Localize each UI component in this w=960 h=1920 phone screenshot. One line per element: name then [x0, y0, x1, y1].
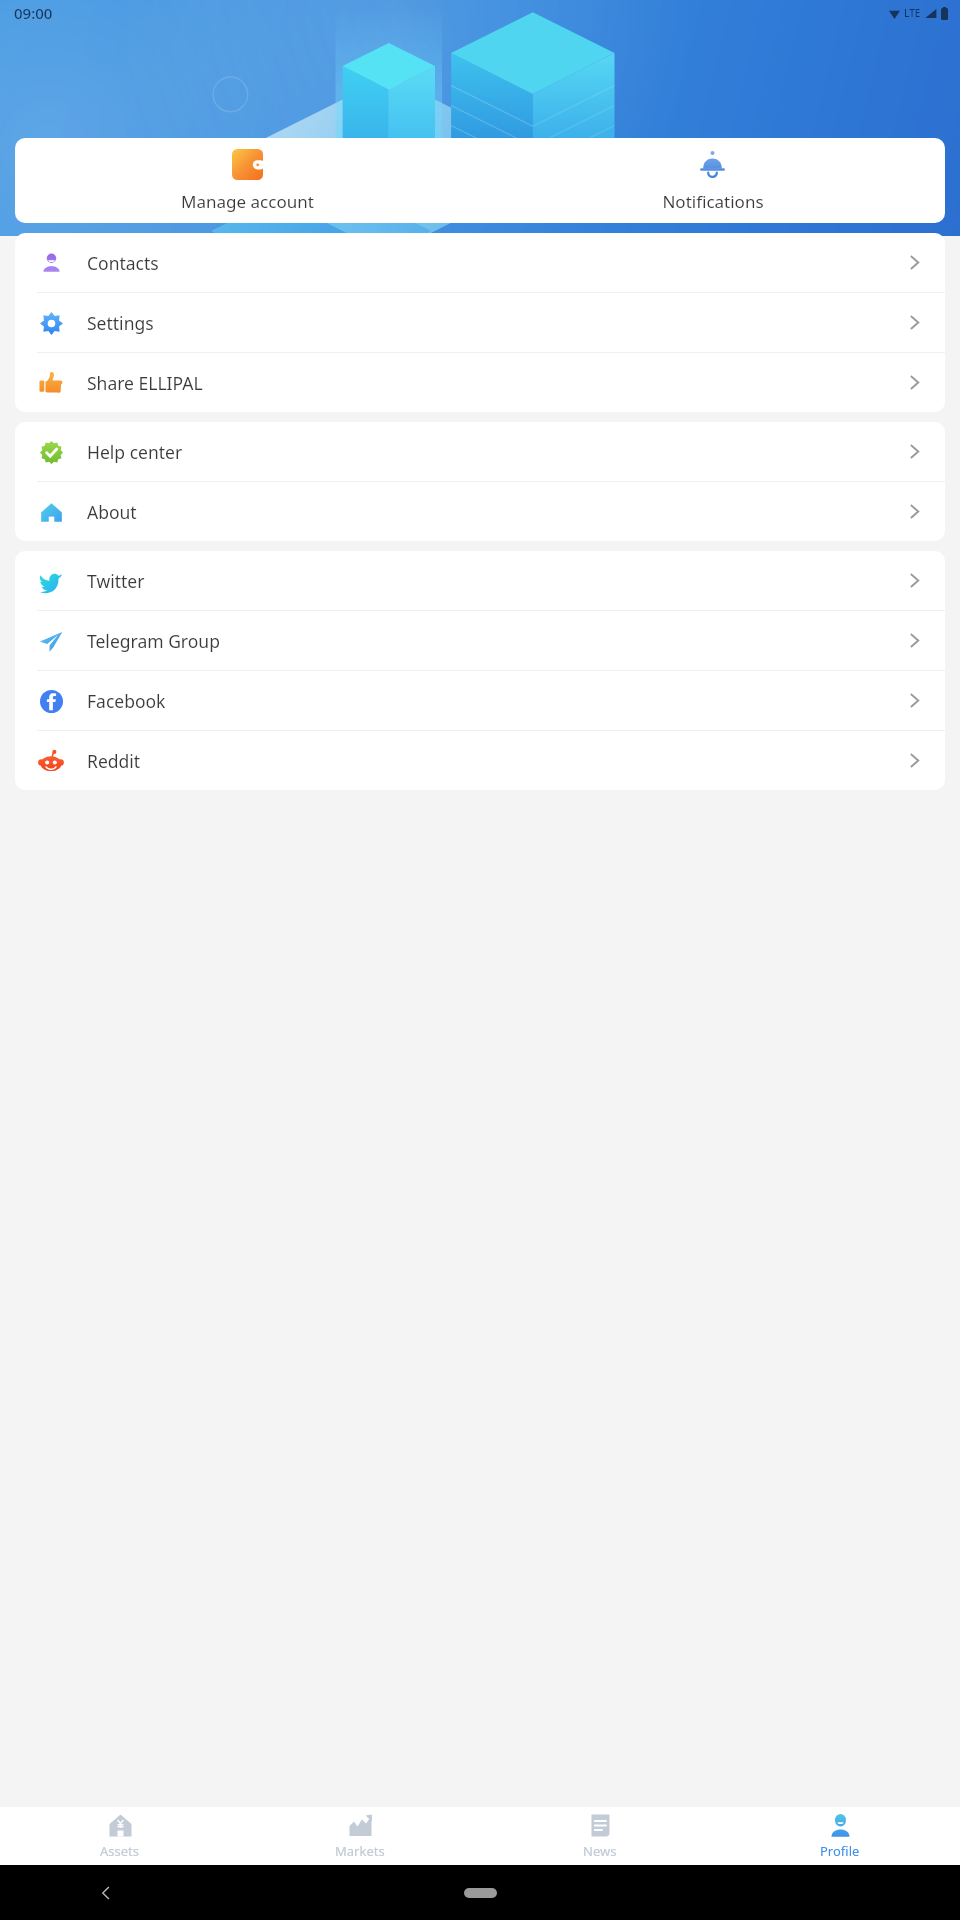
button[interactable]: Help center	[15, 422, 945, 482]
staticText: Telegram Group	[87, 629, 220, 653]
button[interactable]: Notifications	[480, 138, 945, 223]
button[interactable]: Markets	[240, 1807, 480, 1865]
staticText: LTE	[904, 6, 921, 20]
staticText: Assets	[100, 1842, 140, 1860]
button[interactable]: Twitter	[15, 551, 945, 611]
staticText: News	[583, 1842, 617, 1860]
button[interactable]: Settings	[15, 293, 945, 353]
button[interactable]: About	[15, 482, 945, 541]
button[interactable]: Back	[98, 1885, 114, 1901]
button[interactable]: Manage account	[15, 138, 480, 223]
staticText: Profile	[820, 1842, 860, 1860]
staticText: 09:00	[14, 3, 53, 23]
button[interactable]: Share ELLIPAL	[15, 353, 945, 412]
staticText: Help center	[87, 440, 183, 464]
staticText: Reddit	[87, 749, 141, 773]
staticText: Manage account	[181, 190, 314, 213]
staticText: Contacts	[87, 251, 159, 275]
button[interactable]: Profile	[720, 1807, 960, 1865]
button[interactable]: Telegram Group	[15, 611, 945, 671]
staticText: Facebook	[87, 689, 166, 713]
button[interactable]: Contacts	[15, 233, 945, 293]
button[interactable]: Assets	[0, 1807, 240, 1865]
staticText: Settings	[87, 311, 154, 335]
staticText: Notifications	[662, 190, 764, 213]
button[interactable]: Reddit	[15, 731, 945, 790]
button[interactable]: News	[480, 1807, 720, 1865]
button[interactable]: Home	[464, 1888, 497, 1898]
staticText: Twitter	[87, 569, 145, 593]
staticText: Markets	[335, 1842, 385, 1860]
staticText: About	[87, 500, 137, 524]
button[interactable]: Facebook	[15, 671, 945, 731]
staticText: Share ELLIPAL	[87, 371, 203, 395]
